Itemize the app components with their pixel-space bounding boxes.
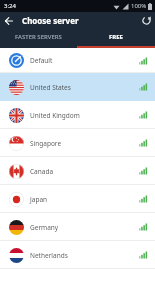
- staticText: Default: [30, 56, 53, 65]
- staticText: Singapore: [30, 139, 62, 148]
- button[interactable]: Default: [0, 48, 155, 73]
- staticText: FASTER SERVERS: [15, 33, 62, 41]
- button[interactable]: Singapore: [0, 129, 155, 157]
- button[interactable]: United Kingdom: [0, 101, 155, 129]
- staticText: Germany: [30, 223, 59, 232]
- staticText: 100%: [131, 2, 147, 10]
- button[interactable]: Japan: [0, 185, 155, 213]
- staticText: Canada: [30, 167, 54, 176]
- button[interactable]: Canada: [0, 157, 155, 185]
- staticText: Choose server: [22, 15, 79, 26]
- staticText: 3:24: [4, 2, 16, 10]
- button[interactable]: FASTER SERVERS: [0, 29, 77, 44]
- button[interactable]: [0, 12, 18, 29]
- button[interactable]: Germany: [0, 213, 155, 241]
- button[interactable]: Netherlands: [0, 241, 155, 269]
- staticText: FREE: [109, 33, 123, 41]
- button[interactable]: United States: [0, 73, 155, 101]
- staticText: Japan: [30, 195, 48, 204]
- staticText: United States: [30, 83, 71, 92]
- button[interactable]: [137, 12, 155, 29]
- button[interactable]: FREE: [77, 29, 155, 44]
- staticText: United Kingdom: [30, 111, 80, 120]
- staticText: Netherlands: [30, 251, 68, 260]
